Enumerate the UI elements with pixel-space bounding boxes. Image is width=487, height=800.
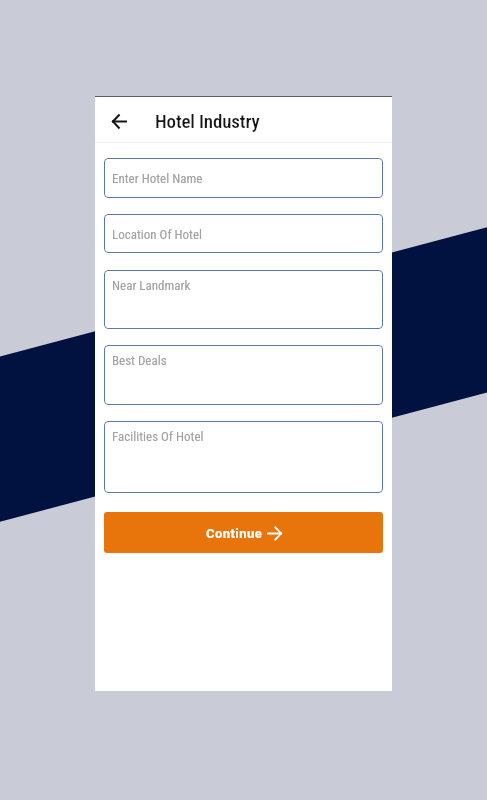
staticText: Best Deals xyxy=(112,353,167,368)
staticText: Location Of Hotel xyxy=(112,227,202,242)
staticText: Hotel Industry xyxy=(155,110,260,132)
button[interactable]: Location Of Hotel xyxy=(104,214,383,253)
button[interactable]: Best Deals xyxy=(104,345,383,405)
staticText: Facilities Of Hotel xyxy=(112,429,204,444)
button[interactable]: Near Landmark xyxy=(104,270,383,329)
staticText: Enter Hotel Name xyxy=(112,171,203,186)
button[interactable]: Facilities Of Hotel xyxy=(104,421,383,493)
button[interactable]: Back xyxy=(103,105,135,137)
button[interactable]: Continue xyxy=(104,512,383,553)
button[interactable]: Enter Hotel Name xyxy=(104,158,383,198)
staticText: Near Landmark xyxy=(112,278,191,293)
staticText: Continue xyxy=(206,526,263,541)
